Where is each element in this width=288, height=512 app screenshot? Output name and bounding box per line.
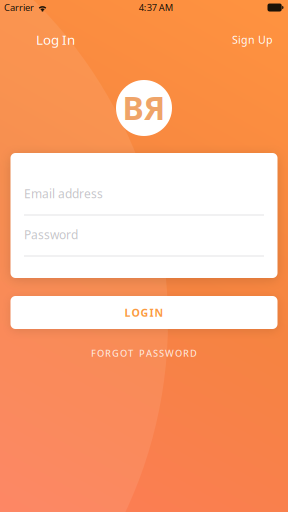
button[interactable]: F O R G O T P A S S W O R D bbox=[83, 342, 205, 364]
button[interactable]: Sign Up bbox=[230, 25, 275, 54]
staticText: L O G I N bbox=[124, 305, 163, 320]
button[interactable]: Password bbox=[10, 215, 277, 256]
staticText: F O R G O T P A S S W O R D bbox=[91, 347, 197, 359]
staticText: 4:37 AM bbox=[139, 1, 173, 14]
button[interactable]: Log In bbox=[34, 25, 77, 54]
button[interactable]: L O G I N bbox=[10, 296, 277, 329]
staticText: Email address bbox=[24, 186, 103, 201]
staticText: Log In bbox=[36, 31, 75, 48]
staticText: Password bbox=[24, 227, 78, 242]
staticText: Carrier bbox=[4, 1, 34, 14]
staticText: Sign Up bbox=[232, 32, 273, 47]
staticText: BЯ bbox=[122, 86, 165, 129]
button[interactable]: Email address bbox=[10, 174, 277, 215]
